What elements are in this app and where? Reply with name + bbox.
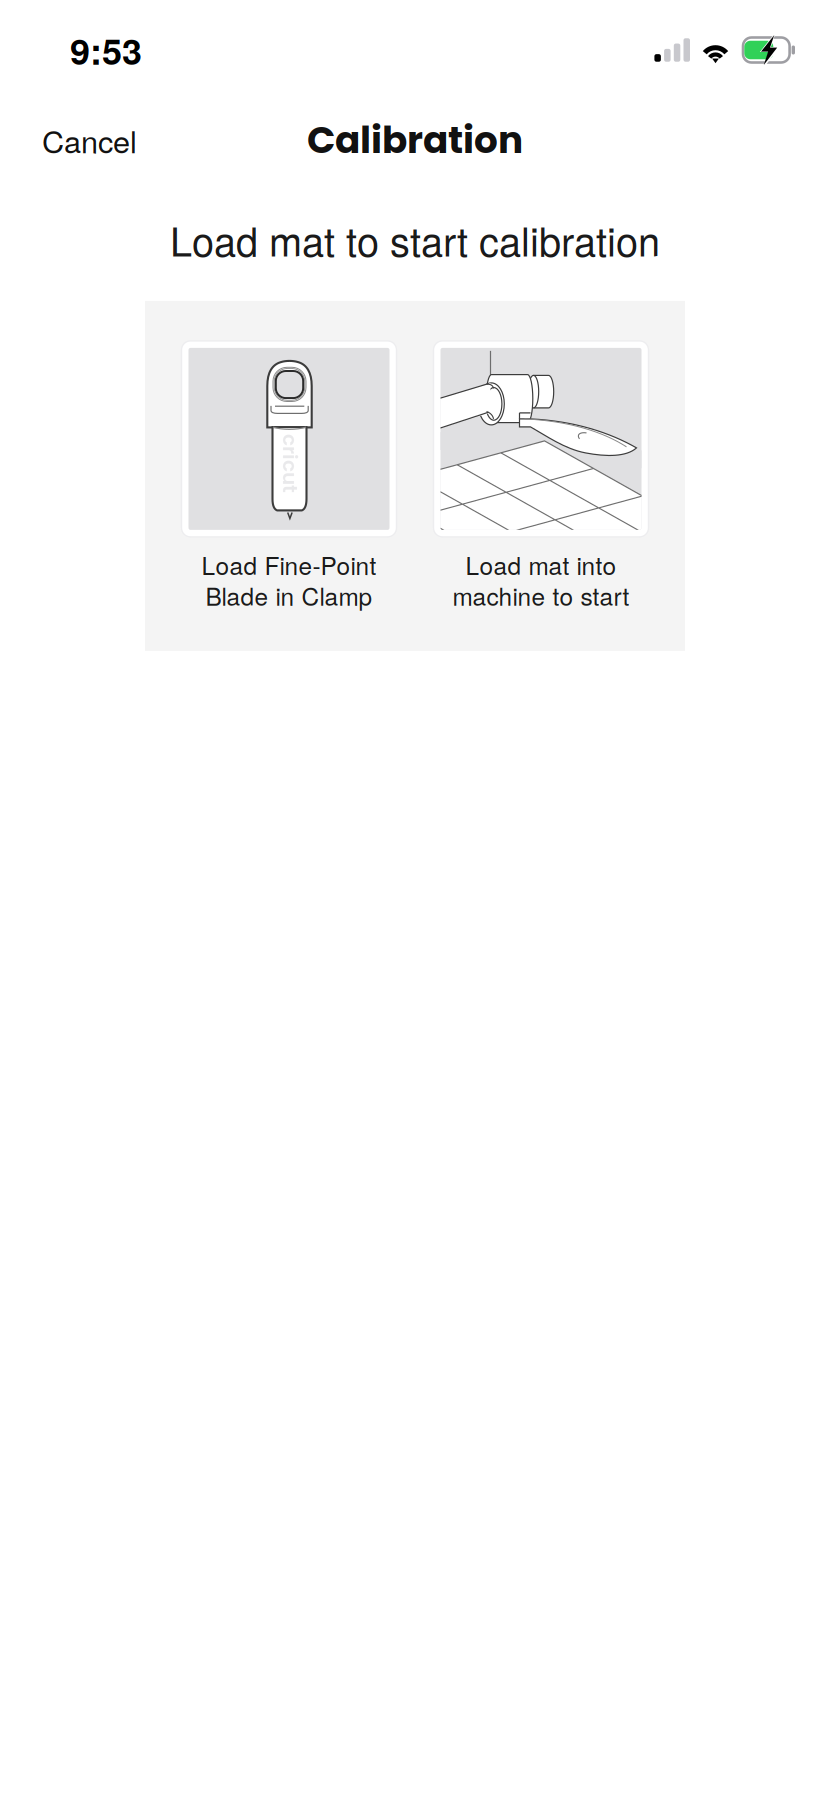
staticText: machine to start [452, 578, 629, 613]
staticText: cricut [260, 449, 319, 477]
staticText: Cancel [42, 118, 137, 162]
staticText: Calibration [307, 114, 523, 166]
button[interactable]: Cancel [32, 106, 147, 174]
staticText: Load Fine-Point [201, 547, 376, 582]
staticText: 9:53 [70, 24, 142, 76]
staticText: Load mat into [465, 547, 616, 582]
staticText: Load mat to start calibration [170, 211, 660, 268]
staticText: Blade in Clamp [205, 578, 372, 613]
